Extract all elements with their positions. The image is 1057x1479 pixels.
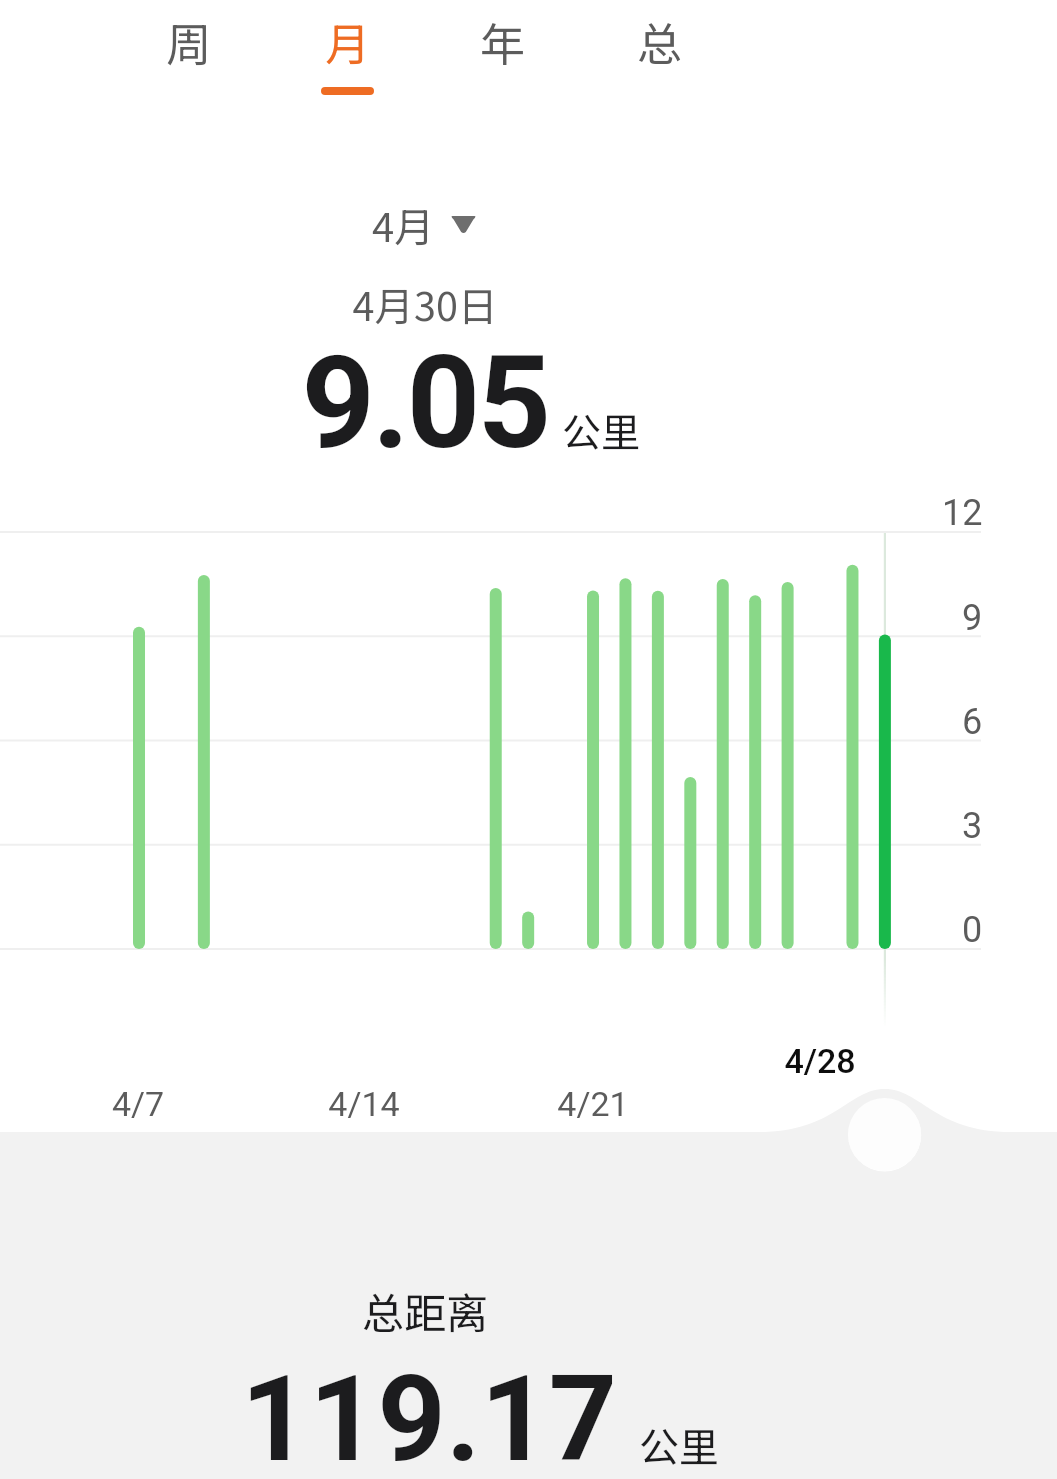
staticText: 4月 <box>372 196 435 254</box>
button[interactable]: 月 <box>269 0 425 110</box>
staticText: 4/14 <box>264 1084 464 1124</box>
staticText: 周 <box>166 9 212 74</box>
staticText: 0 <box>962 909 983 949</box>
staticText: 年 <box>480 9 526 74</box>
staticText: 4/7 <box>38 1084 238 1124</box>
button[interactable]: 周 <box>111 0 267 110</box>
button[interactable]: 总 <box>582 0 738 110</box>
staticText: 月 <box>325 9 371 74</box>
button[interactable]: 年 <box>425 0 581 110</box>
staticText: 公里 <box>251 402 951 458</box>
staticText: 4/28 <box>720 1041 920 1081</box>
staticText: 总 <box>637 9 683 74</box>
staticText: 总距离 <box>75 1280 775 1341</box>
staticText: 3 <box>962 805 983 845</box>
staticText: 4月30日 <box>75 275 775 332</box>
staticText: 4/21 <box>493 1084 693 1124</box>
button[interactable]: Choose month: April <box>352 190 492 262</box>
staticText: 119.17 <box>79 1350 779 1479</box>
staticText: 9 <box>962 597 983 637</box>
staticText: 6 <box>962 701 983 741</box>
button[interactable]: Scrub chart <box>848 1098 921 1171</box>
staticText: 9.05 <box>75 328 775 478</box>
staticText: 12 <box>942 492 983 532</box>
staticText: 公里 <box>329 1416 1029 1474</box>
